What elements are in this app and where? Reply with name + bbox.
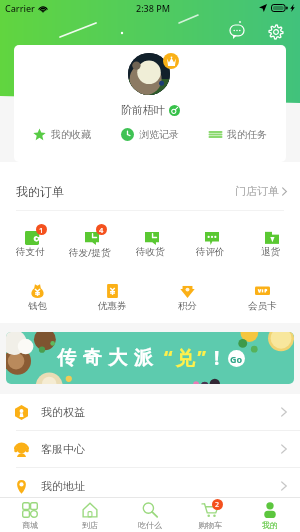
staticText: 我的任务 bbox=[227, 128, 267, 141]
staticText: 我的 bbox=[262, 520, 278, 530]
button[interactable]: 商城 bbox=[0, 498, 60, 532]
button[interactable]: 浏览记录 bbox=[119, 125, 181, 144]
staticText: 门店订单 bbox=[235, 184, 279, 198]
button[interactable]: 优惠券 bbox=[75, 284, 150, 312]
staticText: 4 bbox=[99, 225, 104, 235]
staticText: Carrier bbox=[5, 2, 35, 14]
button[interactable]: Settings bbox=[265, 21, 287, 43]
staticText: “兑” bbox=[164, 345, 209, 371]
staticText: 待发/提货 bbox=[69, 246, 111, 259]
staticText: 退货 bbox=[261, 246, 280, 258]
staticText: 2 bbox=[215, 500, 220, 510]
staticText: 吃什么 bbox=[138, 520, 162, 530]
staticText: 优惠券 bbox=[98, 300, 127, 312]
staticText: 我的权益 bbox=[41, 405, 85, 419]
staticText: 待评价 bbox=[196, 246, 225, 258]
staticText: 待收货 bbox=[136, 246, 165, 258]
button[interactable]: 我的收藏 bbox=[31, 125, 93, 144]
staticText: 1 bbox=[39, 225, 44, 235]
button[interactable]: 门店订单 bbox=[235, 178, 287, 204]
staticText: 积分 bbox=[178, 300, 197, 312]
button[interactable]: 客服中心 bbox=[0, 431, 300, 467]
staticText: 商城 bbox=[22, 520, 38, 530]
button[interactable]: Messages bbox=[226, 21, 248, 43]
button[interactable]: 我的地址 bbox=[0, 468, 300, 504]
button[interactable]: 退货 bbox=[240, 222, 300, 258]
staticText: 我的订单 bbox=[16, 184, 64, 199]
button[interactable]: 待收货 bbox=[120, 222, 180, 258]
staticText: 2:38 PM bbox=[136, 2, 170, 14]
button[interactable]: 会员卡 bbox=[225, 284, 300, 312]
button[interactable]: 我的 bbox=[240, 498, 300, 532]
button[interactable]: 传奇大派 bbox=[6, 332, 294, 384]
staticText: 浏览记录 bbox=[139, 128, 179, 141]
staticText: 客服中心 bbox=[41, 442, 85, 456]
button[interactable]: 2 bbox=[180, 498, 240, 532]
staticText: 我的收藏 bbox=[51, 128, 91, 141]
button[interactable]: 积分 bbox=[150, 284, 225, 312]
button[interactable]: 4 bbox=[60, 222, 120, 259]
staticText: Go bbox=[230, 353, 243, 365]
button[interactable]: 吃什么 bbox=[120, 498, 180, 532]
button[interactable]: 我的权益 bbox=[0, 394, 300, 430]
staticText: 会员卡 bbox=[248, 300, 277, 312]
staticText: 购物车 bbox=[198, 520, 222, 530]
button[interactable]: 1 bbox=[0, 222, 60, 258]
button[interactable]: 我的任务 bbox=[207, 125, 269, 144]
staticText: 待支付 bbox=[16, 246, 45, 258]
staticText: 我的地址 bbox=[41, 479, 85, 493]
staticText: 到店 bbox=[82, 520, 98, 530]
staticText: ! bbox=[214, 345, 220, 371]
staticText: 钱包 bbox=[28, 300, 47, 312]
staticText: 传奇大派 bbox=[54, 346, 156, 370]
button[interactable]: 待评价 bbox=[180, 222, 240, 258]
staticText: 阶前梧叶 bbox=[121, 103, 165, 117]
button[interactable]: 钱包 bbox=[0, 284, 75, 312]
button[interactable]: 到店 bbox=[60, 498, 120, 532]
